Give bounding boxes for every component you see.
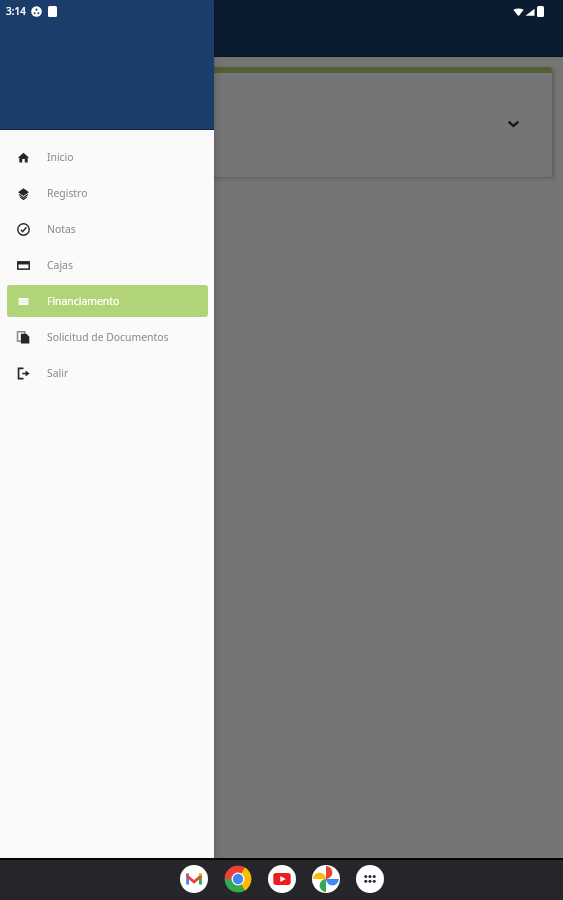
button[interactable]: Chrome xyxy=(224,865,252,893)
staticText: Financiamento xyxy=(47,294,120,308)
staticText: Salir xyxy=(47,366,69,380)
button[interactable]: Expand xyxy=(500,110,526,136)
staticText: 3:14 xyxy=(6,4,26,18)
button[interactable]: All apps xyxy=(356,865,384,893)
staticText: Solicitud de Documentos xyxy=(47,330,169,344)
staticText: Registro xyxy=(47,186,88,200)
button[interactable]: Salir xyxy=(7,357,208,389)
button[interactable]: Registro xyxy=(7,177,208,209)
button[interactable]: Gmail xyxy=(180,865,208,893)
button[interactable]: Financiamento xyxy=(7,285,208,317)
button[interactable]: Inicio xyxy=(7,141,208,173)
button[interactable]: Cajas xyxy=(7,249,208,281)
button[interactable]: Photos xyxy=(312,865,340,893)
button[interactable]: Solicitud de Documentos xyxy=(7,321,208,353)
staticText: Inicio xyxy=(47,150,74,164)
staticText: Notas xyxy=(47,222,76,236)
button[interactable]: YouTube xyxy=(268,865,296,893)
staticText: Cajas xyxy=(47,258,73,272)
button[interactable]: Notas xyxy=(7,213,208,245)
